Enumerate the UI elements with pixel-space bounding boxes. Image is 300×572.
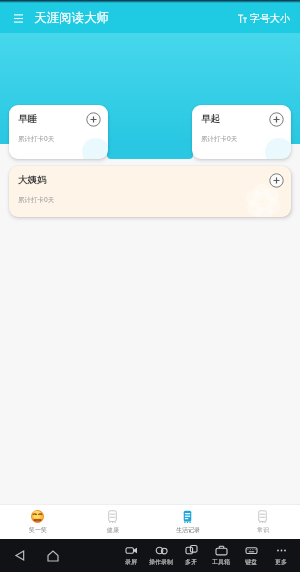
staticText: 累计打卡0天: [201, 134, 238, 143]
button[interactable]: 早睡: [9, 105, 108, 159]
staticText: 多开: [185, 558, 197, 566]
staticText: 更多: [275, 558, 287, 566]
staticText: 早起: [201, 113, 220, 125]
button[interactable]: Home: [45, 548, 60, 563]
button[interactable]: 健康: [75, 505, 150, 539]
button[interactable]: 早起: [192, 105, 291, 159]
button[interactable]: 大姨妈: [9, 166, 291, 217]
button[interactable]: 笑一笑: [0, 505, 75, 539]
button[interactable]: Back: [13, 548, 28, 563]
button[interactable]: 多开: [176, 545, 206, 566]
button[interactable]: 字号大小: [236, 8, 292, 29]
button[interactable]: 键盘: [236, 545, 266, 566]
button[interactable]: 常识: [225, 505, 300, 539]
button[interactable]: 更多: [266, 545, 296, 566]
staticText: 常识: [257, 526, 269, 534]
staticText: 录屏: [125, 558, 137, 566]
staticText: 键盘: [245, 558, 257, 566]
button[interactable]: 操作录制: [146, 545, 176, 566]
staticText: 累计打卡0天: [18, 134, 55, 143]
button[interactable]: Add: [269, 173, 284, 188]
staticText: 字号大小: [250, 12, 290, 25]
button[interactable]: Menu: [8, 8, 28, 28]
staticText: 早睡: [18, 113, 37, 125]
button[interactable]: 生活记录: [150, 505, 225, 539]
staticText: 生活记录: [176, 526, 200, 534]
button[interactable]: Add: [269, 112, 284, 127]
button[interactable]: Add: [86, 112, 101, 127]
staticText: 累计打卡0天: [18, 195, 55, 204]
button[interactable]: 录屏: [116, 545, 146, 566]
staticText: 健康: [107, 526, 119, 534]
staticText: 笑一笑: [29, 526, 47, 534]
staticText: 工具箱: [212, 558, 230, 566]
button[interactable]: 工具箱: [206, 545, 236, 566]
staticText: 天涯阅读大师: [34, 10, 109, 26]
staticText: 操作录制: [149, 558, 173, 566]
staticText: 大姨妈: [18, 174, 47, 186]
